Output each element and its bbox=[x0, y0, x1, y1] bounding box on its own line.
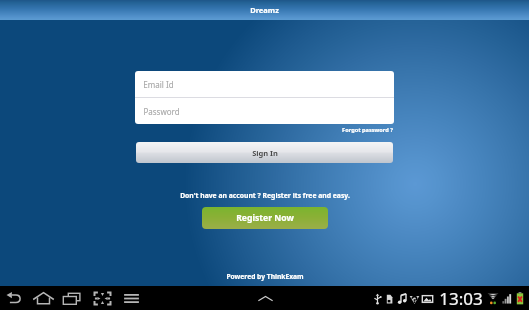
staticText: Email Id bbox=[143, 79, 174, 90]
staticText: Sign In bbox=[252, 148, 278, 158]
button[interactable]: Forgot password ? bbox=[341, 126, 394, 134]
button[interactable]: Register Now bbox=[202, 207, 328, 229]
button[interactable]: Email Id bbox=[135, 71, 394, 97]
staticText: 13:03 bbox=[439, 287, 483, 310]
staticText: Dreamz bbox=[250, 5, 279, 15]
button[interactable]: Menu bbox=[116, 286, 145, 310]
staticText: Forgot password ? bbox=[342, 126, 393, 134]
button[interactable]: Sign In bbox=[136, 142, 393, 163]
staticText: Password bbox=[143, 106, 180, 117]
button[interactable]: Home bbox=[29, 286, 58, 310]
button[interactable]: Back bbox=[0, 286, 29, 310]
button[interactable]: Expand bbox=[252, 286, 278, 310]
staticText: Register Now bbox=[236, 212, 294, 224]
button[interactable]: Password bbox=[135, 98, 394, 124]
staticText: Powered by ThinkExam bbox=[226, 272, 304, 281]
button[interactable]: Screenshot bbox=[87, 286, 116, 310]
staticText: Don't have an account ? Register its fre… bbox=[180, 191, 350, 200]
button[interactable]: Recent apps bbox=[58, 286, 87, 310]
